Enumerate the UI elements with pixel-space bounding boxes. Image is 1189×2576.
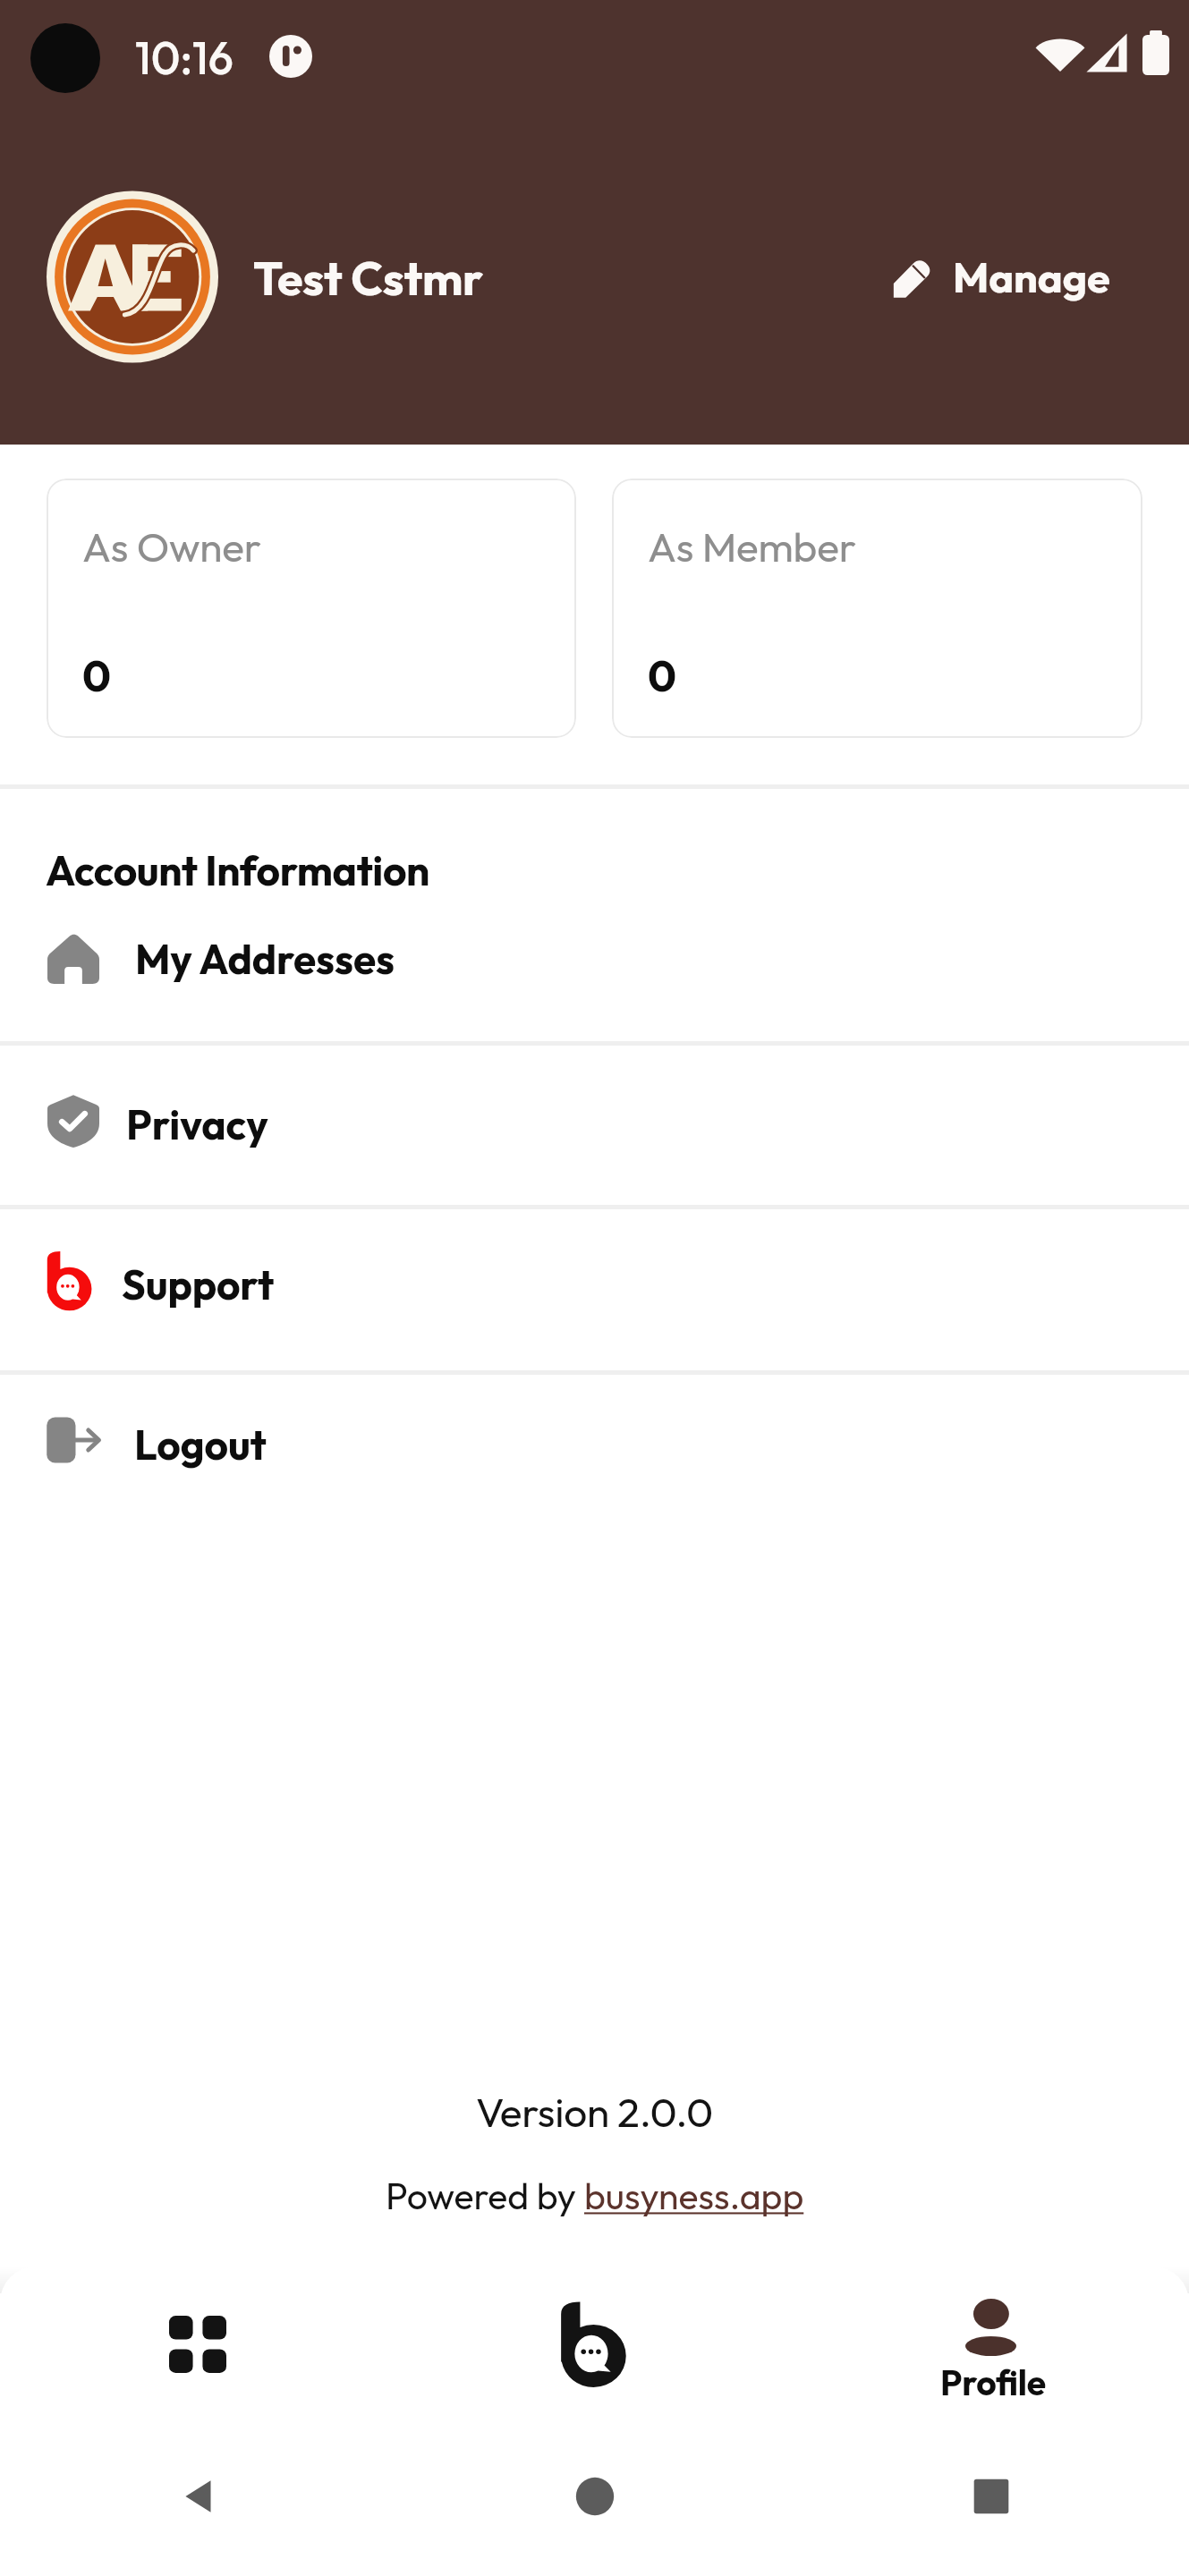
button[interactable]: Privacy xyxy=(0,1046,1189,1205)
button[interactable]: As Owner xyxy=(47,479,576,738)
button[interactable]: Home xyxy=(396,2417,793,2576)
staticText: Manage xyxy=(953,250,1110,303)
button[interactable]: Back xyxy=(0,2417,396,2576)
staticText: Test Cstmr xyxy=(253,249,484,308)
staticText: Profile xyxy=(940,2360,1046,2404)
button[interactable]: Logout xyxy=(0,1375,1189,1536)
staticText: 10:16 xyxy=(135,30,234,86)
staticText: Version 2.0.0 xyxy=(476,2086,713,2138)
staticText: Privacy xyxy=(126,1098,268,1150)
button[interactable]: Support xyxy=(0,1209,1189,1370)
button[interactable]: Profile xyxy=(921,2267,1086,2417)
staticText: As Member xyxy=(648,521,856,572)
staticText: Account Information xyxy=(46,844,429,896)
staticText: 0 xyxy=(82,648,111,702)
button[interactable]: As Member xyxy=(612,479,1142,738)
button[interactable]: Recent apps xyxy=(793,2417,1189,2576)
staticText: As Owner xyxy=(82,521,261,572)
button[interactable]: Manage xyxy=(877,238,1136,309)
button[interactable]: My Addresses xyxy=(0,894,1189,1041)
staticText: Support xyxy=(122,1258,275,1310)
staticText: Powered by xyxy=(386,2173,584,2219)
button[interactable]: Dashboard xyxy=(115,2267,280,2417)
staticText: 0 xyxy=(648,648,676,702)
button[interactable]: Chat xyxy=(506,2267,682,2417)
button[interactable]: busyness.app xyxy=(584,2173,804,2219)
staticText: Logout xyxy=(134,1419,267,1470)
staticText: My Addresses xyxy=(135,933,395,985)
